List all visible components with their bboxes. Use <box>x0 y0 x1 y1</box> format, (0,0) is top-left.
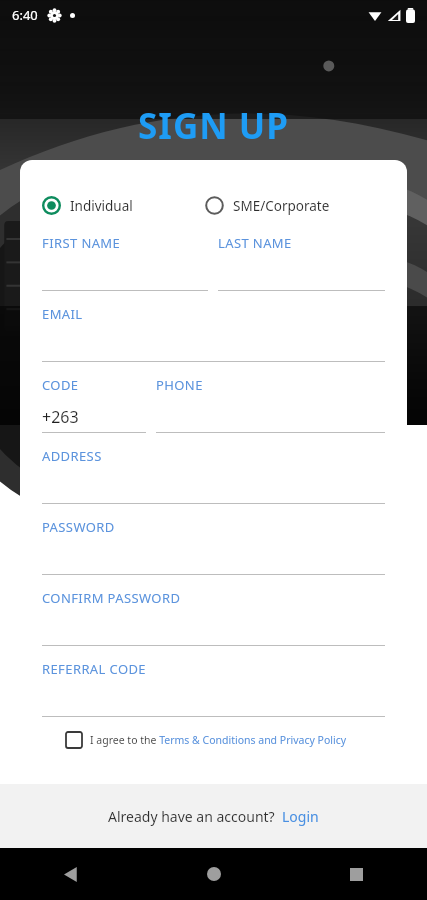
staticText: Login <box>282 807 319 826</box>
staticText: Individual <box>70 197 133 215</box>
staticText: Already have an account? <box>108 807 275 826</box>
staticText: SIGN UP <box>138 102 289 150</box>
staticText: FIRST NAME <box>42 234 121 252</box>
button[interactable]: Back <box>0 848 143 900</box>
button[interactable]: Home <box>143 848 285 900</box>
button[interactable]: SME/Corporate <box>205 196 385 215</box>
staticText: PASSWORD <box>42 518 115 536</box>
button[interactable]: I agree to the Terms & Conditions and Pr… <box>42 732 385 748</box>
staticText: EMAIL <box>42 305 83 323</box>
staticText: REFERRAL CODE <box>42 660 146 678</box>
button[interactable]: Individual <box>42 196 205 215</box>
staticText: ADDRESS <box>42 447 102 465</box>
staticText: 6:40 <box>12 6 38 24</box>
staticText: SME/Corporate <box>233 197 330 215</box>
button[interactable]: Already have an account? <box>108 807 319 826</box>
staticText: +263 <box>42 406 79 428</box>
button[interactable]: Recent apps <box>285 848 427 900</box>
staticText: CODE <box>42 376 79 394</box>
staticText: CONFIRM PASSWORD <box>42 589 181 607</box>
button[interactable]: +263 <box>42 405 146 429</box>
staticText: LAST NAME <box>218 234 292 252</box>
staticText: I agree to the Terms & Conditions and Pr… <box>90 733 347 747</box>
staticText: PHONE <box>156 376 203 394</box>
